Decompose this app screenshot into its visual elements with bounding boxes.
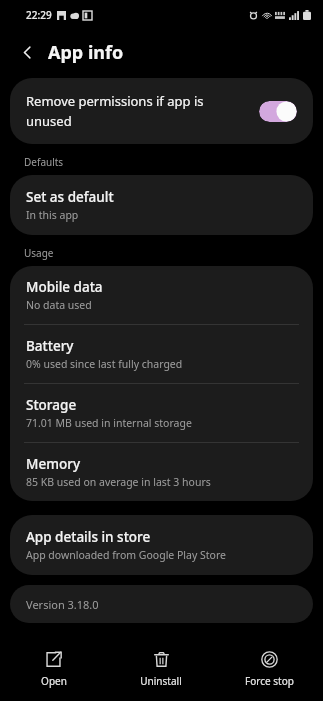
staticText: No data used [26,298,92,312]
staticText: Mobile data [26,278,103,296]
button[interactable]: Set as default [10,175,313,235]
button[interactable]: Back [10,35,44,69]
staticText: Storage [26,396,77,414]
staticText: App info [48,40,124,65]
staticText: Defaults [24,155,64,169]
button[interactable]: Open [0,641,107,701]
staticText: 22:29 [26,8,52,22]
button[interactable]: Storage [10,384,313,442]
button[interactable]: Force stop [215,641,323,701]
staticText: Force stop [245,674,294,688]
button[interactable]: Mobile data [10,266,313,324]
staticText: Remove permissions if app is [26,92,204,110]
staticText: Memory [26,455,81,473]
staticText: App details in store [26,528,151,546]
staticText: Battery [26,337,74,355]
staticText: Usage [24,246,54,260]
button[interactable]: Remove permissions if app is [10,78,313,144]
button[interactable]: Battery [10,325,313,383]
button[interactable]: App details in store [10,515,313,575]
button[interactable]: Remove permissions toggle [259,101,297,122]
staticText: Uninstall [140,674,182,688]
staticText: unused [26,112,72,130]
staticText: 0% used since last fully charged [26,357,183,371]
staticText: 71.01 MB used in internal storage [26,416,192,430]
staticText: Set as default [26,188,114,206]
staticText: Open [41,674,67,688]
staticText: In this app [26,208,79,222]
staticText: App downloaded from Google Play Store [26,548,227,562]
button[interactable]: Memory [10,443,313,501]
staticText: Version 3.18.0 [26,597,99,612]
staticText: 85 KB used on average in last 3 hours [26,475,211,489]
button[interactable]: Uninstall [107,641,215,701]
